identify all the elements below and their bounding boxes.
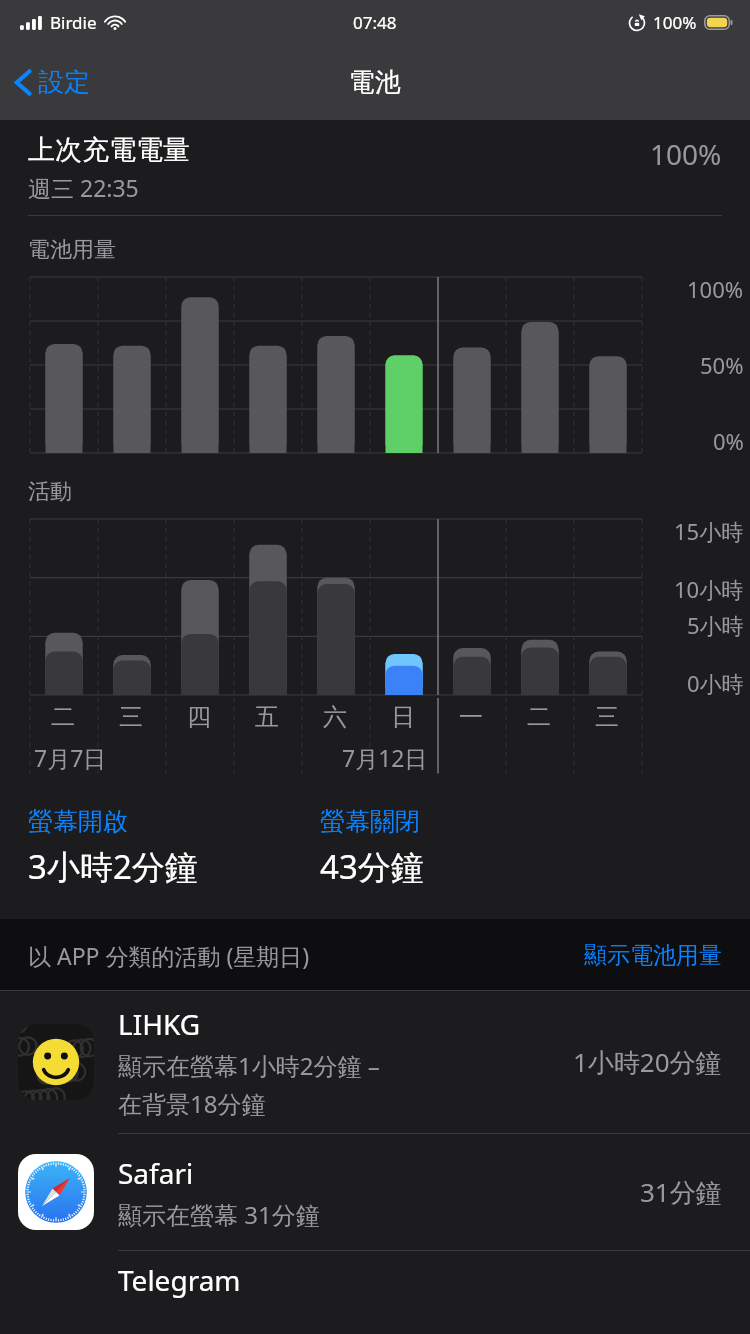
staticText: 螢幕開啟: [28, 806, 128, 837]
staticText: 五: [255, 702, 279, 732]
button[interactable]: 設定: [0, 54, 108, 111]
staticText: 六: [323, 702, 347, 732]
staticText: 100%: [650, 135, 722, 173]
staticText: 7月12日: [342, 742, 428, 773]
staticText: 1小時20分鐘: [573, 1044, 722, 1080]
staticText: 0%: [713, 426, 744, 456]
staticText: 100%: [687, 274, 744, 304]
staticText: 7月7日: [34, 742, 107, 773]
button[interactable]: LIHKG app icon: [0, 991, 750, 1133]
staticText: 10小時: [674, 574, 744, 604]
staticText: 15小時: [674, 516, 744, 546]
staticText: 設定: [38, 66, 90, 99]
staticText: 週三 22:35: [28, 172, 139, 203]
staticText: Birdie: [50, 11, 97, 34]
staticText: 以 APP 分類的活動 (星期日): [28, 940, 310, 971]
staticText: 在背景18分鐘: [118, 1087, 266, 1120]
staticText: 顯示電池用量: [584, 941, 722, 970]
staticText: 顯示在螢幕1小時2分鐘 –: [118, 1049, 380, 1082]
staticText: 顯示在螢幕 31分鐘: [118, 1198, 320, 1231]
staticText: 四: [187, 702, 211, 732]
staticText: 07:48: [353, 11, 397, 34]
staticText: 三: [119, 702, 143, 732]
button[interactable]: 顯示電池用量: [570, 931, 750, 980]
staticText: 一: [459, 702, 483, 732]
staticText: 43分鐘: [320, 844, 424, 889]
button[interactable]: Safari app icon: [0, 1134, 750, 1250]
staticText: 3小時2分鐘: [28, 844, 198, 889]
staticText: Safari: [118, 1154, 194, 1192]
button[interactable]: Telegram: [0, 1251, 750, 1311]
staticText: Telegram: [118, 1261, 241, 1299]
staticText: 電池: [349, 66, 401, 99]
staticText: 100%: [653, 11, 697, 34]
staticText: 二: [51, 702, 75, 732]
staticText: 上次充電電量: [28, 133, 190, 167]
staticText: 31分鐘: [640, 1174, 722, 1210]
staticText: 二: [527, 702, 551, 732]
staticText: 0小時: [687, 668, 744, 698]
staticText: 螢幕關閉: [320, 806, 420, 837]
staticText: 活動: [28, 478, 72, 506]
other: LIHKG app icon: [18, 1024, 94, 1100]
staticText: 50%: [700, 350, 744, 380]
staticText: 5小時: [687, 610, 744, 640]
staticText: 電池用量: [28, 236, 116, 264]
staticText: LIHKG: [118, 1005, 201, 1043]
staticText: 三: [595, 702, 619, 732]
staticText: 日: [391, 702, 415, 732]
other: Safari app icon: [18, 1154, 94, 1230]
